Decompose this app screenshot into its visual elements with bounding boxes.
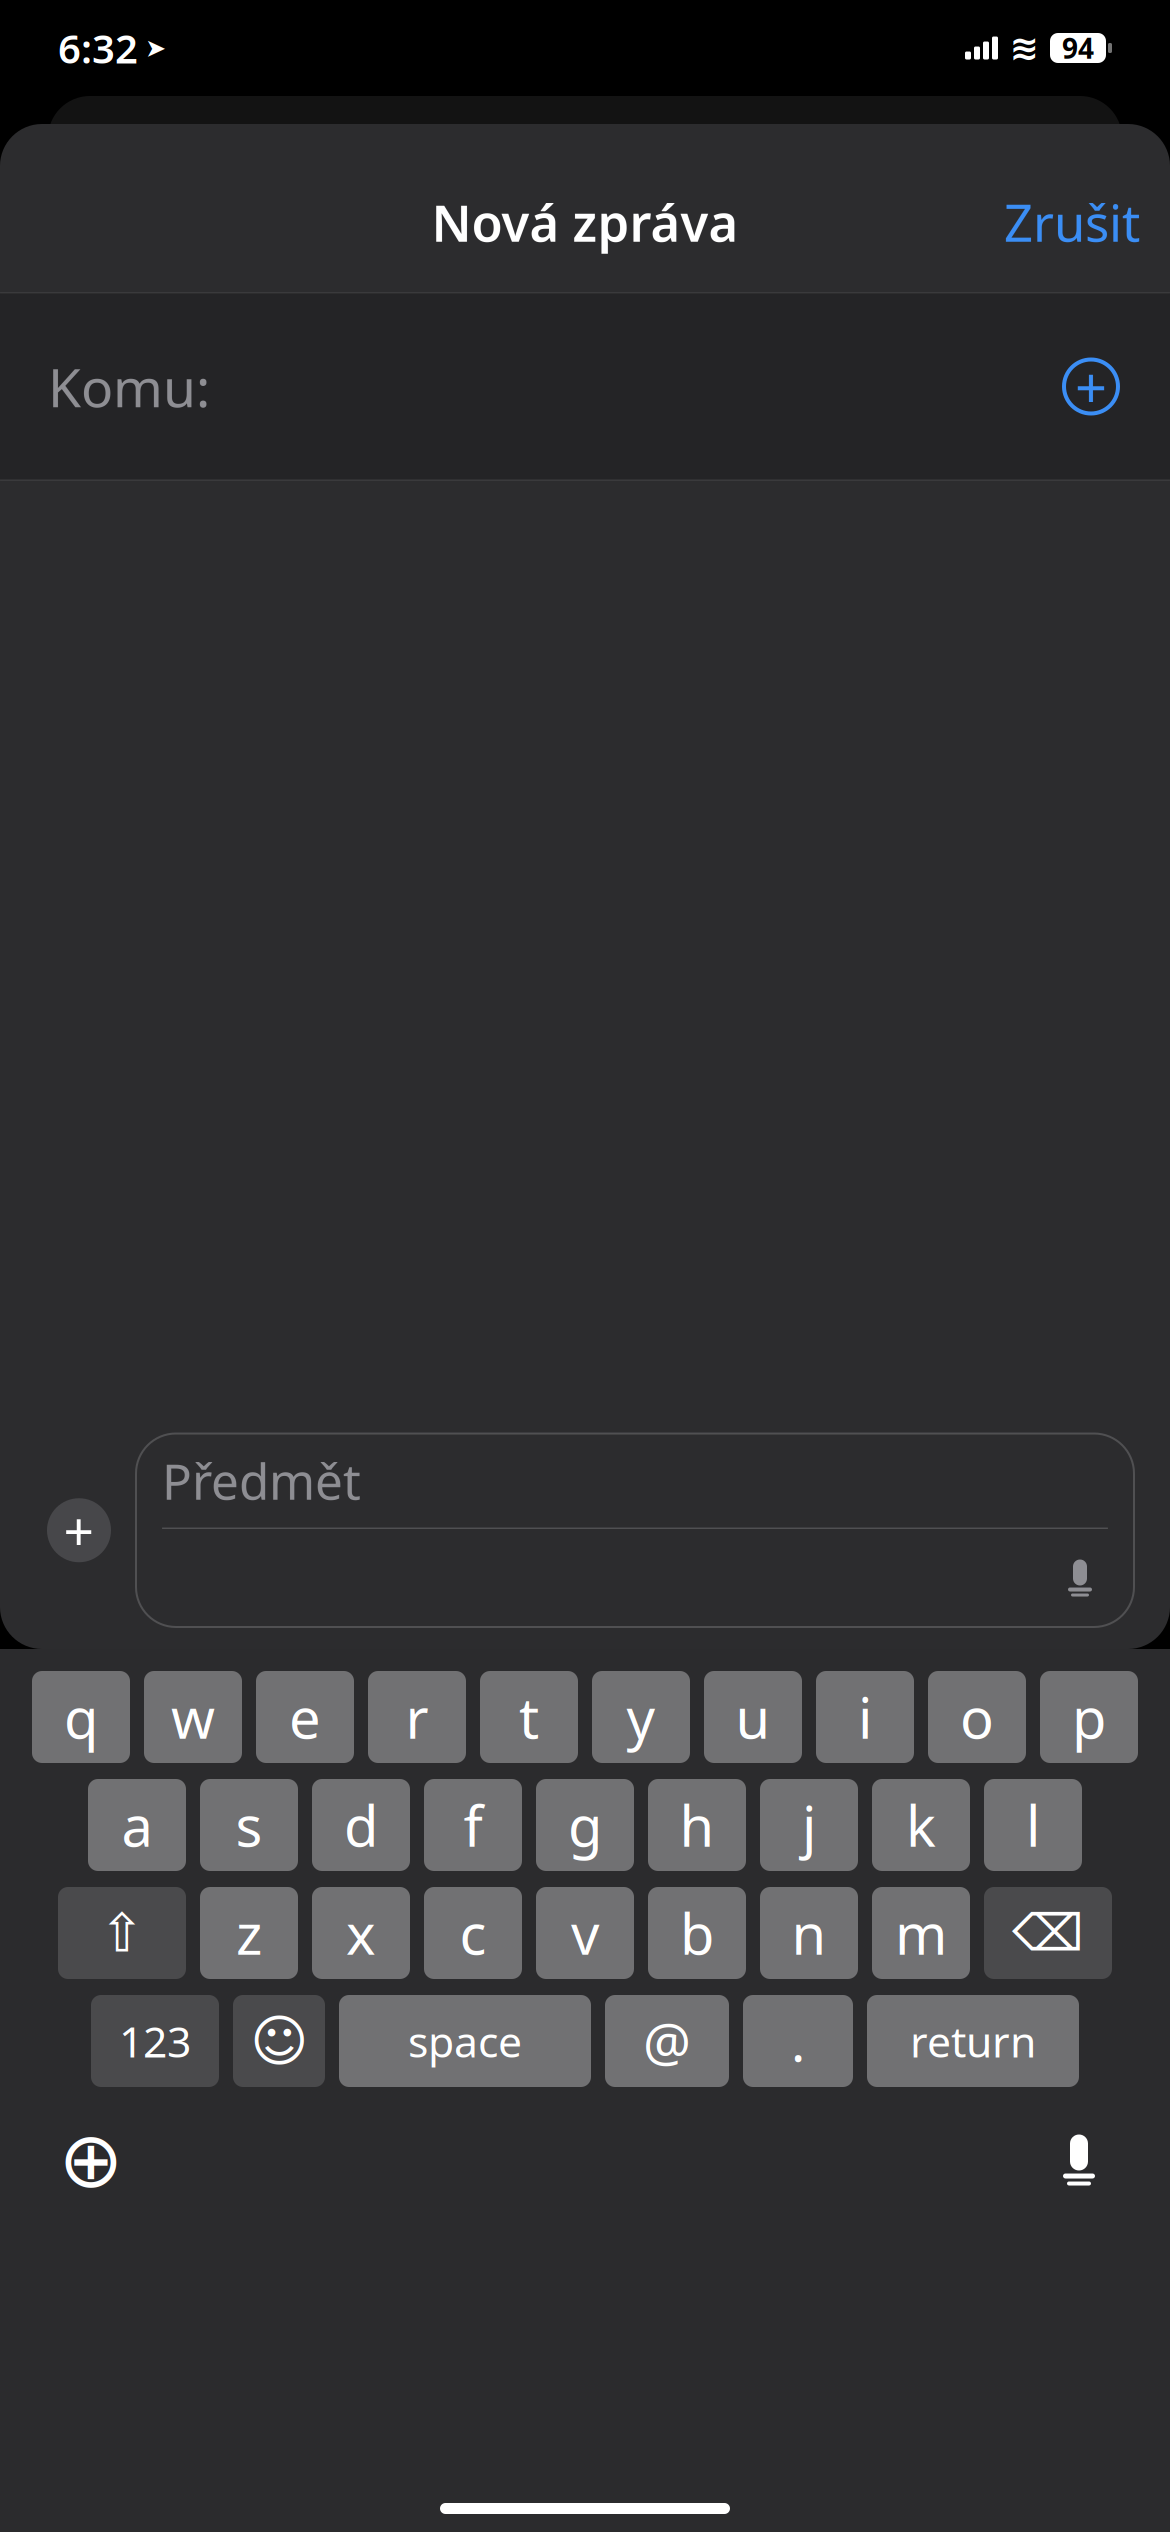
staticText: Předmět <box>162 1448 361 1513</box>
staticText: v <box>571 1896 599 1970</box>
staticText: ☺ <box>250 2009 308 2073</box>
staticText: r <box>405 1680 428 1754</box>
staticText: z <box>236 1896 262 1970</box>
button[interactable]: h <box>648 1779 746 1871</box>
staticText: . <box>791 2006 805 2076</box>
button[interactable]: Emoji <box>233 1995 325 2087</box>
staticText: t <box>519 1680 539 1754</box>
button[interactable]: o <box>928 1671 1026 1763</box>
staticText: b <box>680 1896 714 1970</box>
button[interactable]: n <box>760 1887 858 1979</box>
button[interactable]: @ <box>605 1995 729 2087</box>
staticText: l <box>1026 1788 1040 1862</box>
button[interactable]: i <box>816 1671 914 1763</box>
staticText: 123 <box>119 2013 191 2069</box>
staticText: ⇧ <box>99 1903 144 1963</box>
button[interactable]: s <box>200 1779 298 1871</box>
staticText: e <box>289 1680 321 1754</box>
staticText: g <box>568 1788 602 1862</box>
button[interactable]: q <box>32 1671 130 1763</box>
button[interactable]: e <box>256 1671 354 1763</box>
staticText: Nová zpráva <box>431 188 738 256</box>
button[interactable]: Komu: <box>0 293 1170 479</box>
staticText: Zrušit <box>1004 188 1140 256</box>
button[interactable]: Zrušit <box>974 174 1170 270</box>
button[interactable]: z <box>200 1887 298 1979</box>
button[interactable]: d <box>312 1779 410 1871</box>
button[interactable]: c <box>424 1887 522 1979</box>
button[interactable]: Add recipient <box>1046 341 1136 431</box>
button[interactable]: v <box>536 1887 634 1979</box>
button[interactable]: Period <box>743 1995 853 2087</box>
staticText: o <box>960 1680 994 1754</box>
staticText: 6:32 <box>58 21 138 74</box>
staticText: a <box>121 1788 152 1862</box>
button[interactable]: Shift <box>58 1887 186 1979</box>
button[interactable]: k <box>872 1779 970 1871</box>
staticText: return <box>910 2013 1036 2069</box>
button[interactable]: return <box>867 1995 1079 2087</box>
staticText: n <box>791 1896 826 1970</box>
button[interactable]: g <box>536 1779 634 1871</box>
button[interactable]: a <box>88 1779 186 1871</box>
button[interactable]: w <box>144 1671 242 1763</box>
staticText: c <box>459 1896 486 1970</box>
button[interactable]: u <box>704 1671 802 1763</box>
button[interactable]: m <box>872 1887 970 1979</box>
staticText: i <box>858 1680 872 1754</box>
staticText: y <box>626 1680 655 1754</box>
staticText: + <box>63 1495 94 1566</box>
staticText: p <box>1072 1680 1106 1754</box>
staticText: + <box>1075 349 1107 424</box>
button[interactable]: Add attachment <box>36 1487 122 1573</box>
button[interactable]: l <box>984 1779 1082 1871</box>
staticText: Komu: <box>48 351 210 422</box>
button[interactable]: Next keyboard <box>36 2105 146 2215</box>
staticText: q <box>64 1680 98 1754</box>
button[interactable]: y <box>592 1671 690 1763</box>
button[interactable]: t <box>480 1671 578 1763</box>
button[interactable]: Numbers <box>91 1995 219 2087</box>
button[interactable]: Dictate <box>1052 1548 1108 1608</box>
button[interactable]: j <box>760 1779 858 1871</box>
staticText: s <box>235 1788 262 1862</box>
staticText: u <box>735 1680 770 1754</box>
staticText: space <box>408 2013 522 2069</box>
button[interactable]: f <box>424 1779 522 1871</box>
button[interactable]: x <box>312 1887 410 1979</box>
button[interactable]: p <box>1040 1671 1138 1763</box>
button[interactable]: Delete <box>984 1887 1112 1979</box>
staticText: k <box>906 1788 936 1862</box>
staticText: h <box>679 1788 714 1862</box>
staticText: x <box>346 1896 376 1970</box>
staticText: f <box>463 1788 482 1862</box>
staticText: ➤ <box>145 34 166 62</box>
button[interactable]: space <box>339 1995 591 2087</box>
staticText: ⊕ <box>58 2116 123 2204</box>
button[interactable]: Dictation <box>1024 2105 1134 2215</box>
staticText: d <box>344 1788 378 1862</box>
staticText: w <box>171 1680 215 1754</box>
staticText: j <box>802 1788 816 1862</box>
button[interactable]: b <box>648 1887 746 1979</box>
staticText: ⌫ <box>1012 1904 1084 1962</box>
staticText: @ <box>643 2006 691 2076</box>
button[interactable]: r <box>368 1671 466 1763</box>
staticText: m <box>895 1896 947 1970</box>
staticText: ≋ <box>1009 28 1038 68</box>
staticText: 94 <box>1062 29 1094 67</box>
